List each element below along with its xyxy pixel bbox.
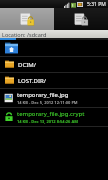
staticText: 5:31 PM [87,1,106,8]
staticText: 14 KB - Dec 5, 2012 12:11:00 PM [17,100,78,105]
staticText: LOST.DIR/ [18,77,46,85]
staticText: DCIM/ [18,61,36,69]
button[interactable]: Encrypted files tab [54,8,108,30]
staticText: temporary_file.jpg [17,91,69,99]
button[interactable]: Go to parent directory [0,40,108,56]
button[interactable]: temporary_file.jpg [0,89,108,107]
staticText: Location: /sdcard [2,31,47,38]
button[interactable]: temporary_file.jpg.crypt [0,108,108,126]
staticText: temporary_file.jpg.crypt [17,110,85,118]
button[interactable]: Decrypted files tab [0,8,54,30]
staticText: 14 KB - Dec 13, 2012 8:54:26 AM [17,119,78,124]
button[interactable]: LOST.DIR/ [0,73,108,88]
button[interactable]: DCIM/ [0,57,108,72]
